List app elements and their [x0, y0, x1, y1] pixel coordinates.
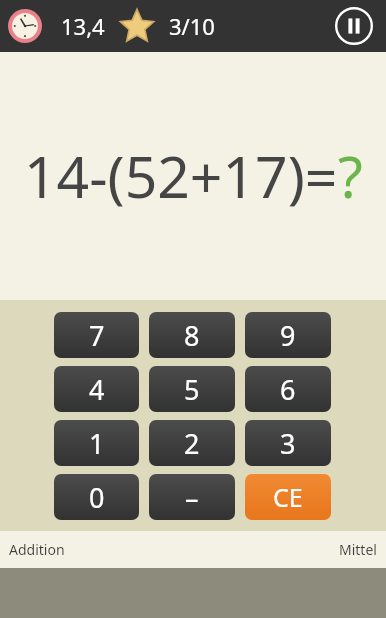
button[interactable]: CE: [245, 474, 331, 520]
button[interactable]: –: [149, 474, 235, 520]
staticText: 1: [89, 425, 105, 462]
button[interactable]: 3: [245, 420, 331, 466]
button[interactable]: 4: [54, 366, 139, 412]
staticText: Addition: [9, 540, 65, 559]
staticText: 5: [184, 371, 200, 408]
button[interactable]: 8: [149, 312, 235, 358]
button[interactable]: Pause: [332, 4, 376, 48]
staticText: 3/10: [169, 11, 215, 41]
staticText: –: [185, 479, 199, 516]
staticText: 2: [184, 425, 200, 462]
button[interactable]: 7: [54, 312, 139, 358]
staticText: 4: [89, 371, 105, 408]
staticText: 13,4: [61, 11, 105, 41]
staticText: ?: [338, 137, 363, 215]
button[interactable]: 2: [149, 420, 235, 466]
staticText: CE: [273, 480, 303, 514]
staticText: 7: [89, 317, 105, 354]
staticText: 6: [280, 371, 296, 408]
button[interactable]: 0: [54, 474, 139, 520]
staticText: Mittel: [339, 540, 377, 559]
staticText: 14-(52+17)=: [24, 137, 338, 215]
staticText: 8: [184, 317, 200, 354]
staticText: 9: [280, 317, 296, 354]
button[interactable]: 1: [54, 420, 139, 466]
button[interactable]: 5: [149, 366, 235, 412]
staticText: 0: [89, 479, 105, 516]
button[interactable]: 6: [245, 366, 331, 412]
button[interactable]: 9: [245, 312, 331, 358]
staticText: 3: [280, 425, 296, 462]
